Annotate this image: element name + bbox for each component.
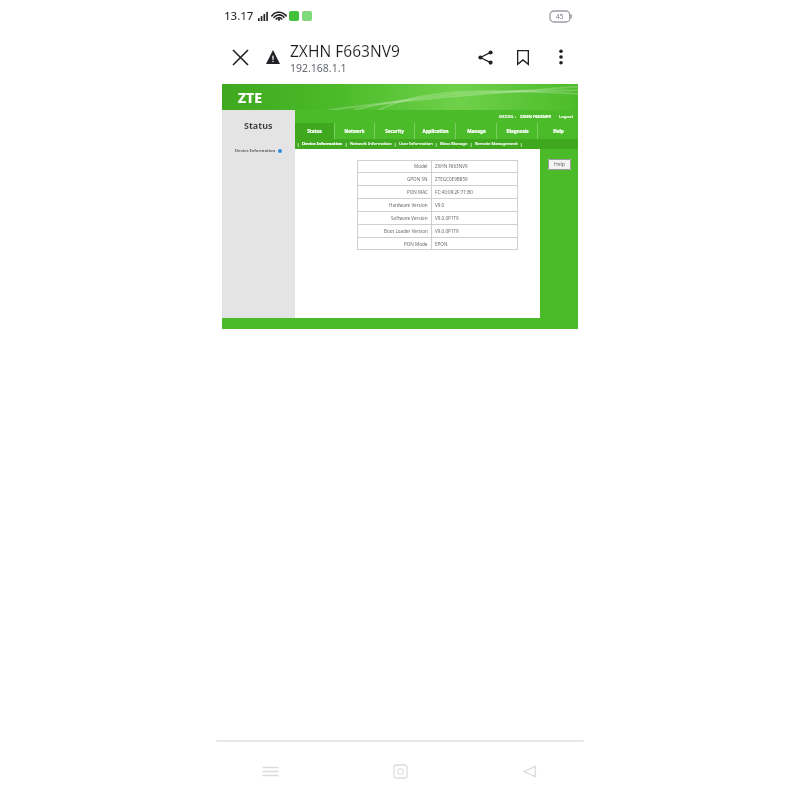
staticText: V9.0.0P1T9 (435, 228, 459, 234)
staticText: Device Information (302, 141, 343, 147)
staticText: | (520, 142, 523, 147)
button[interactable]: Network (335, 123, 374, 139)
staticText: PON Mode (404, 241, 428, 247)
button[interactable]: Mass Manage (440, 141, 468, 147)
button[interactable]: Application (415, 123, 455, 139)
staticText: | (394, 142, 397, 147)
staticText: Help (554, 161, 565, 168)
button[interactable]: Home (380, 751, 420, 791)
button[interactable]: Site information (262, 46, 284, 68)
staticText: Diagnosis (506, 128, 529, 134)
button[interactable]: Device Information (302, 141, 343, 147)
button[interactable]: Back (510, 751, 550, 791)
staticText: GPON SN (407, 176, 428, 182)
staticText: User Information (399, 141, 433, 147)
button[interactable]: Help (548, 159, 571, 170)
button[interactable]: Security (375, 123, 414, 139)
staticText: Mass Manage (440, 141, 468, 147)
staticText: Device Information (235, 148, 276, 154)
button[interactable]: Close (224, 41, 256, 73)
staticText: Remote Management (475, 141, 518, 147)
button[interactable]: User Information (399, 141, 433, 147)
staticText: ZXHN F663NV9 (435, 163, 468, 169)
button[interactable]: ZXHN F663NV9 (290, 40, 470, 75)
button[interactable]: Status (295, 123, 334, 139)
staticText: | (435, 142, 438, 147)
staticText: Boot Loader Version (384, 228, 428, 234)
staticText: | (297, 142, 300, 147)
staticText: | (345, 142, 348, 147)
staticText: V9.0.0P1T9 (435, 215, 459, 221)
staticText: PON MAC (407, 189, 428, 195)
button[interactable]: Bookmark (508, 42, 538, 72)
button[interactable]: Network Information (350, 141, 392, 147)
staticText: Help (553, 128, 564, 134)
button[interactable]: Diagnosis (497, 123, 537, 139)
button[interactable]: Help (538, 123, 578, 139)
staticText: EPON (435, 241, 448, 247)
button[interactable]: Manage (456, 123, 496, 139)
staticText: Manage (467, 128, 486, 134)
staticText: Model (414, 163, 428, 169)
button[interactable]: Device Information (222, 148, 295, 154)
staticText: Status (244, 119, 273, 131)
button[interactable]: Logout (559, 114, 573, 120)
staticText: ZTE (238, 88, 263, 107)
button[interactable]: Recent apps (250, 751, 290, 791)
staticText: 192.168.1.1 (290, 61, 347, 75)
button[interactable]: Share (470, 42, 500, 72)
staticText: MODEL : (499, 114, 516, 120)
staticText: Status (307, 128, 322, 134)
staticText: ZXHN F663NV9 (520, 114, 551, 120)
staticText: Logout (559, 114, 573, 120)
button[interactable]: More options (546, 42, 576, 72)
staticText: V9.0 (435, 202, 445, 208)
staticText: ZTEGC0E9B859 (435, 176, 468, 182)
staticText: Hardware Version (389, 202, 428, 208)
staticText: 13.17 (224, 8, 254, 24)
staticText: Software Version (391, 215, 428, 221)
staticText: Network (344, 128, 365, 134)
staticText: ZXHN F663NV9 (290, 40, 400, 61)
button[interactable]: Remote Management (475, 141, 518, 147)
staticText: | (470, 142, 473, 147)
staticText: Application (422, 128, 449, 134)
staticText: FC:40:09:2F:71:B0 (435, 189, 473, 195)
staticText: 45 (556, 12, 564, 21)
staticText: Security (385, 128, 404, 134)
staticText: Network Information (350, 141, 392, 147)
